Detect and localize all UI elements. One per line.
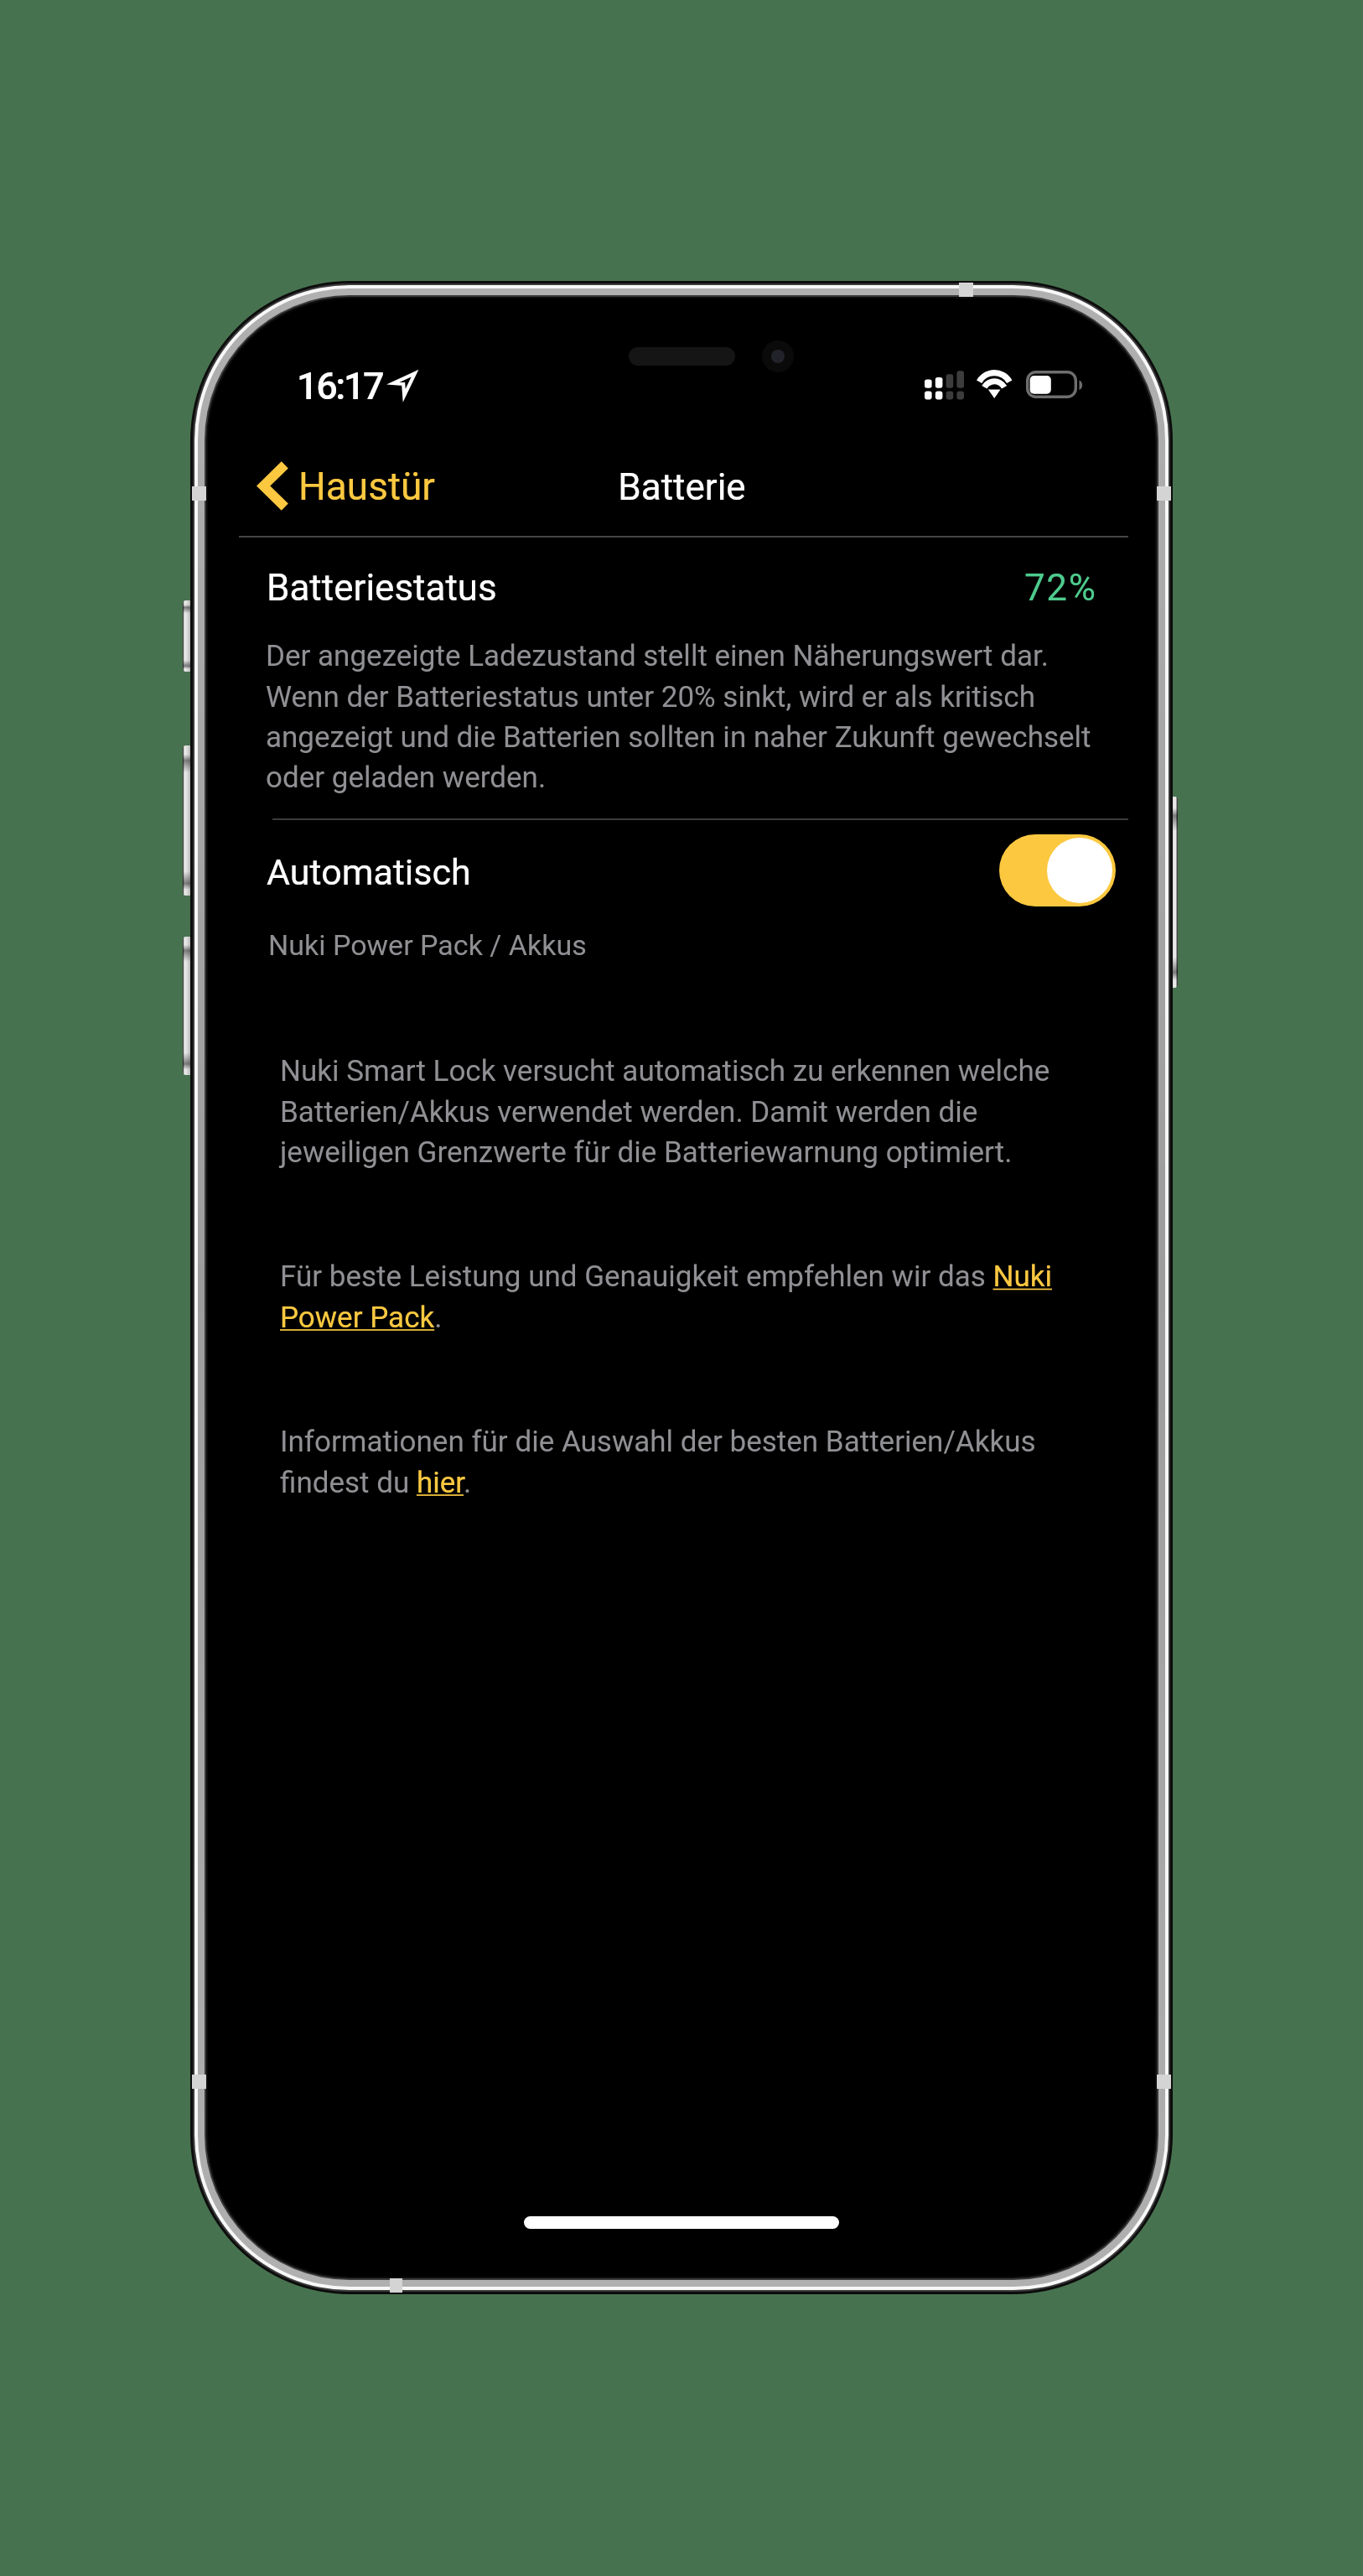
button[interactable]: Informationen für die Auswahl der besten… xyxy=(280,1425,1064,1500)
staticText: Haustür xyxy=(298,464,435,509)
staticText: Nuki Power Pack / Akkus xyxy=(268,928,587,962)
staticText: Nuki Smart Lock versucht automatisch zu … xyxy=(280,1054,1064,1170)
staticText: Batterie xyxy=(618,465,746,509)
staticText: 16:17 xyxy=(297,364,383,408)
button[interactable]: Für beste Leistung und Genauigkeit empfe… xyxy=(280,1259,1064,1335)
staticText: Der angezeigte Ladezustand stellt einen … xyxy=(266,639,1091,795)
staticText: Automatisch xyxy=(267,851,471,893)
staticText: Batteriestatus xyxy=(267,566,497,610)
staticText: 72% xyxy=(1024,566,1097,610)
button[interactable]: Automatisch xyxy=(999,834,1116,906)
button[interactable]: Haustür xyxy=(245,453,447,518)
